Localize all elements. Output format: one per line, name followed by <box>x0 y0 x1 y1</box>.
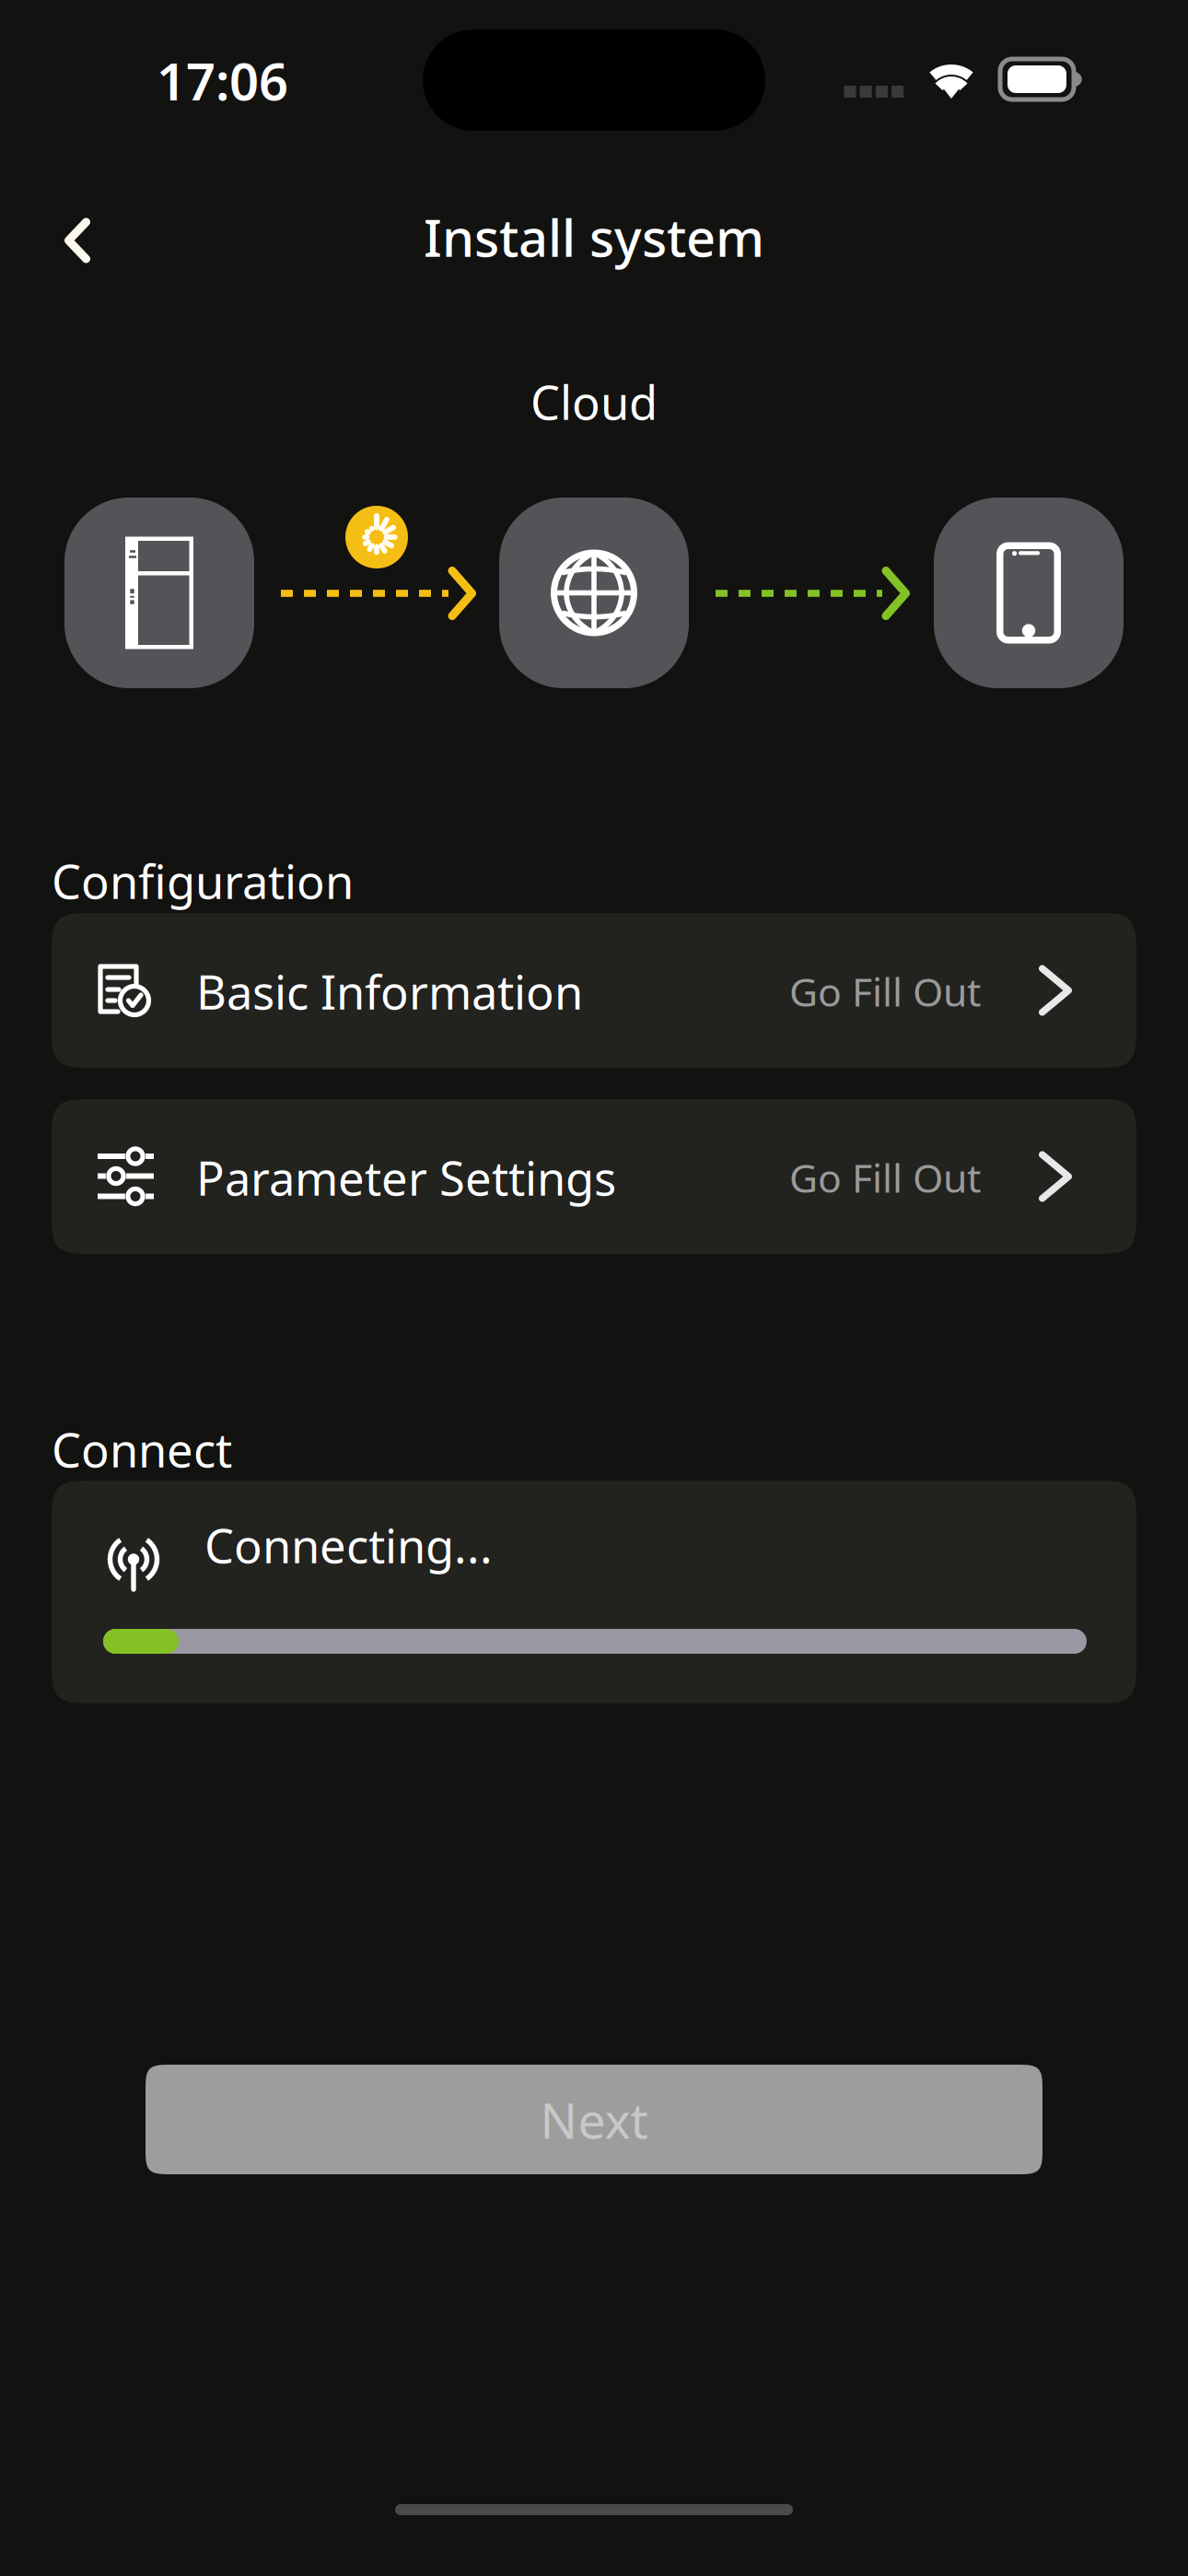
staticText: Cloud <box>530 371 658 433</box>
button[interactable]: Basic Information <box>52 913 1136 1068</box>
staticText: Parameter Settings <box>196 1146 616 1208</box>
staticText: Go Fill Out <box>789 965 981 1018</box>
button[interactable]: Next <box>146 2065 1042 2174</box>
staticText: Connect <box>52 1418 232 1480</box>
staticText: Connecting... <box>204 1514 493 1576</box>
staticText: Configuration <box>52 850 354 912</box>
button[interactable]: Back <box>29 193 125 288</box>
staticText: 17:06 <box>157 46 288 115</box>
button[interactable]: Parameter Settings <box>52 1099 1136 1254</box>
staticText: Next <box>540 2087 648 2152</box>
staticText: Install system <box>424 203 764 271</box>
staticText: Basic Information <box>196 960 583 1022</box>
staticText: Go Fill Out <box>789 1151 981 1204</box>
